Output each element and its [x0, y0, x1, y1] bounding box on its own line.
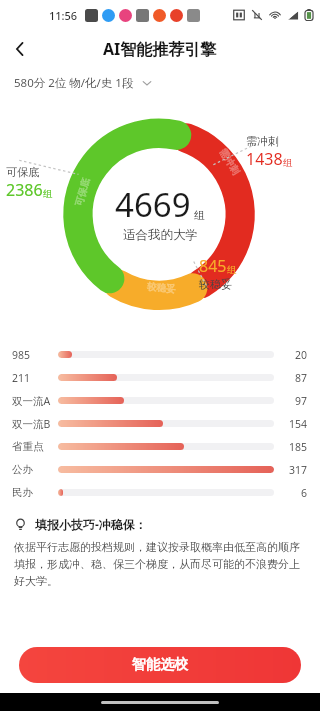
button[interactable]: 民办 — [12, 481, 308, 504]
staticText: 845 — [199, 255, 227, 277]
button[interactable]: 985 — [12, 343, 308, 366]
staticText: 组 — [283, 157, 293, 169]
staticText: 97 — [295, 394, 308, 408]
staticText: 11:56 — [49, 8, 78, 23]
staticText: 智能选校 — [132, 656, 188, 674]
staticText: 6 — [301, 486, 308, 500]
staticText: 双一流B — [12, 417, 51, 431]
staticText: 民办 — [12, 486, 33, 499]
button[interactable]: 双一流A — [12, 389, 308, 412]
button[interactable]: Back — [0, 30, 40, 68]
button[interactable]: 省重点 — [12, 435, 308, 458]
staticText: 185 — [289, 440, 308, 454]
staticText: 公办 — [12, 463, 33, 476]
staticText: 985 — [12, 348, 31, 362]
staticText: 组 — [194, 208, 205, 222]
staticText: 双一流A — [12, 394, 51, 408]
staticText: 填报小技巧-冲稳保： — [35, 516, 147, 532]
staticText: AI智能推荐引擎 — [103, 38, 217, 60]
staticText: 580分 2位 物/化/史 1段 — [14, 75, 134, 91]
staticText: 需冲刺 — [217, 146, 242, 177]
staticText: 可保底 — [73, 176, 92, 208]
staticText: 需冲刺 — [246, 134, 279, 148]
staticText: 211 — [12, 371, 31, 385]
staticText: 组 — [43, 188, 53, 200]
staticText: 依据平行志愿的投档规则，建议按录取概率由低至高的顺序填报，形成冲、稳、保三个梯度… — [14, 540, 306, 588]
staticText: 组 — [227, 264, 237, 276]
staticText: 154 — [289, 417, 308, 431]
staticText: 87 — [295, 371, 308, 385]
button[interactable]: 双一流B — [12, 412, 308, 435]
staticText: 1438 — [246, 148, 283, 170]
staticText: 较稳妥 — [146, 280, 177, 295]
button[interactable]: 公办 — [12, 458, 308, 481]
staticText: 省重点 — [12, 440, 44, 453]
button[interactable]: 智能选校 — [19, 647, 301, 683]
button[interactable]: 211 — [12, 366, 308, 389]
button[interactable]: 580分 2位 物/化/史 1段 — [14, 68, 320, 98]
staticText: 4669 — [115, 182, 191, 227]
staticText: 317 — [289, 463, 308, 477]
staticText: 20 — [295, 348, 308, 362]
staticText: 可保底 — [6, 165, 39, 179]
staticText: 2386 — [6, 179, 43, 201]
staticText: 适合我的大学 — [123, 227, 198, 243]
staticText: 较稳妥 — [199, 277, 232, 291]
